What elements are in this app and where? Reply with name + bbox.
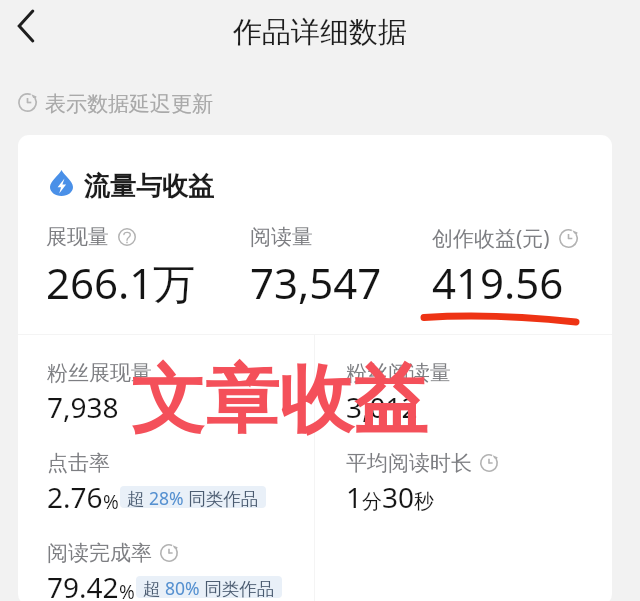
staticText: 73,547 [250,254,382,311]
staticText: 创作收益(元) [432,224,550,253]
staticText: 419.56 [432,254,564,311]
staticText: 流量与收益 [84,170,214,203]
staticText: 2.76 [47,478,103,516]
staticText: 文章收益 [131,354,427,447]
staticText: 超 28% 同类作品 [127,486,259,508]
staticText: % [119,579,135,601]
button[interactable]: Back [0,0,52,52]
staticText: 粉丝展现量 [47,360,152,386]
staticText: % [103,489,119,515]
staticText: 阅读量 [250,224,313,250]
staticText: 点击率 [47,450,110,476]
staticText: 79.42 [47,568,119,601]
staticText: 表示数据延迟更新 [45,91,213,117]
staticText: 平均阅读时长 [346,450,472,476]
staticText: 超 80% 同类作品 [143,576,275,598]
staticText: 展现量 [46,224,109,250]
staticText: 粉丝阅读量 [346,360,451,386]
staticText: 3,012 [346,388,418,426]
staticText: 1分30秒 [346,478,435,516]
staticText: 作品详细数据 [0,14,640,51]
staticText: 266.1万 [46,254,196,311]
staticText: 7,938 [47,388,119,426]
staticText: 阅读完成率 [47,540,152,566]
